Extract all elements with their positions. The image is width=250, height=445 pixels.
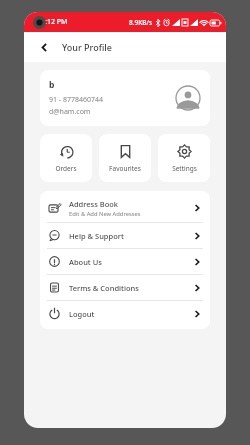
button[interactable]: Favourites xyxy=(99,134,151,182)
staticText: About Us xyxy=(69,257,102,267)
button[interactable]: Back xyxy=(34,37,54,57)
button[interactable]: Logout xyxy=(40,301,210,326)
staticText: Your Profile xyxy=(62,41,112,53)
button[interactable]: About Us xyxy=(40,249,210,274)
staticText: Help & Support xyxy=(69,231,124,241)
staticText: Terms & Conditions xyxy=(69,283,139,293)
staticText: Settings xyxy=(172,164,197,173)
staticText: Edit & Add New Addresses xyxy=(69,210,141,218)
staticText: Address Book xyxy=(69,199,119,209)
staticText: d@ham.com xyxy=(49,107,91,117)
staticText: Orders xyxy=(55,164,77,173)
button[interactable]: Orders xyxy=(40,134,92,182)
button[interactable]: b xyxy=(40,70,210,126)
staticText: 91 - 8778460744 xyxy=(49,95,103,105)
staticText: Logout xyxy=(69,309,95,319)
staticText: 5:12 PM xyxy=(41,17,68,27)
button[interactable]: Help & Support xyxy=(40,223,210,248)
button[interactable]: Terms & Conditions xyxy=(40,275,210,300)
button[interactable]: Address Book xyxy=(40,194,210,222)
staticText: b xyxy=(49,79,55,91)
staticText: 8.9KB/s xyxy=(129,18,153,27)
button[interactable]: Settings xyxy=(158,134,210,182)
staticText: Favourites xyxy=(109,164,141,173)
